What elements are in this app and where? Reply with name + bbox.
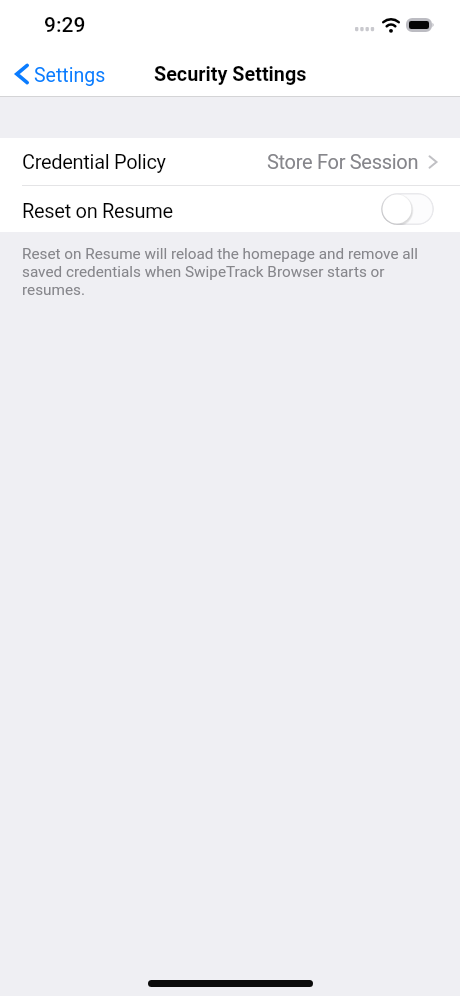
button[interactable]: Reset on Resume <box>0 186 460 232</box>
staticText: Store For Session <box>267 150 419 173</box>
button[interactable]: Reset on Resume, off <box>381 193 434 225</box>
other: Wi-Fi <box>382 18 400 32</box>
button[interactable]: Credential Policy <box>0 138 460 185</box>
staticText: Security Settings <box>154 63 307 86</box>
staticText: Credential Policy <box>22 150 166 173</box>
staticText: 9:29 <box>44 13 86 38</box>
staticText: Reset on Resume <box>22 199 173 222</box>
other: Battery <box>406 18 436 32</box>
staticText: Reset on Resume will reload the homepage… <box>22 245 430 299</box>
staticText: Settings <box>34 64 106 87</box>
other: Cellular signal <box>355 27 376 33</box>
button[interactable]: Back to Settings <box>15 63 106 87</box>
